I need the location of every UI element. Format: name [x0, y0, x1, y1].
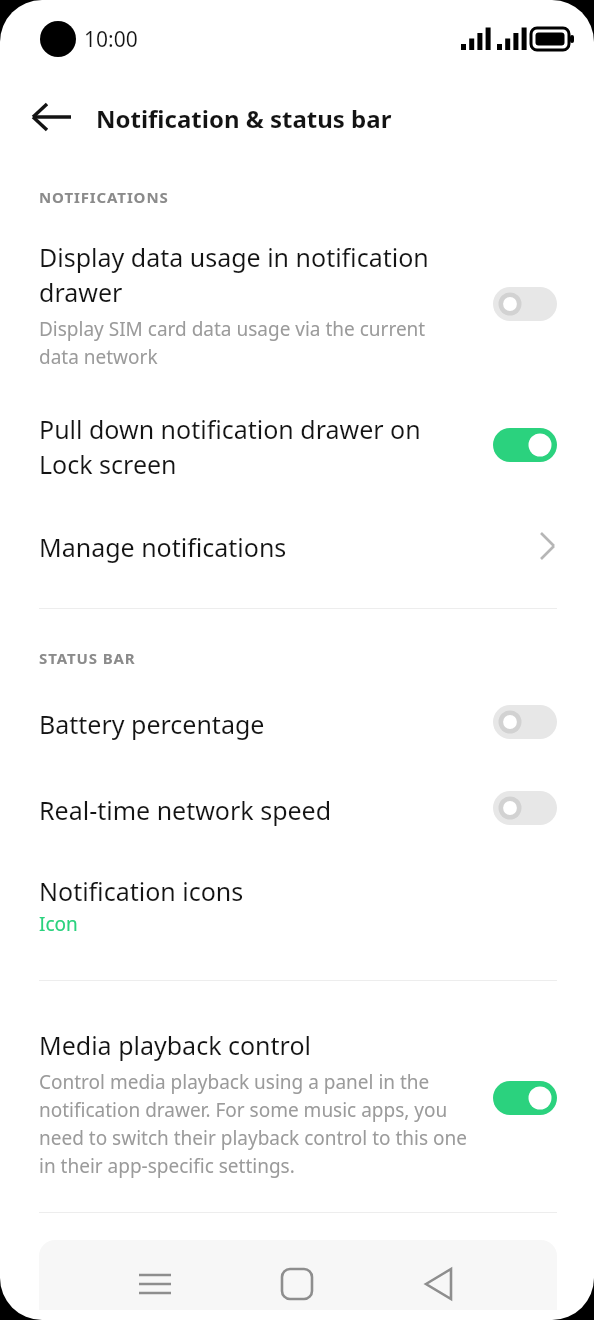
button[interactable]: Toggle off	[493, 287, 557, 321]
staticText: Display data usage in notification drawe…	[39, 240, 459, 310]
button[interactable]: Recent apps	[115, 1258, 195, 1310]
staticText: Manage notifications	[39, 530, 287, 564]
button[interactable]: Battery percentage	[0, 694, 594, 752]
staticText: Notification icons	[39, 874, 244, 908]
staticText: Pull down notification drawer on Lock sc…	[39, 412, 459, 482]
staticText: Real-time network speed	[39, 793, 332, 827]
staticText: STATUS BAR	[39, 648, 136, 668]
staticText: Display SIM card data usage via the curr…	[39, 316, 459, 370]
staticText: Icon	[39, 911, 78, 937]
button[interactable]: Media playback control	[0, 1016, 594, 1196]
button[interactable]: Real-time network speed	[0, 780, 594, 838]
staticText: Battery percentage	[39, 707, 265, 741]
button[interactable]: Toggle off	[493, 791, 557, 825]
button[interactable]: Back	[26, 91, 78, 143]
button[interactable]: Toggle on	[493, 428, 557, 462]
button[interactable]: Pull down notification drawer on Lock sc…	[0, 404, 594, 488]
button[interactable]: Toggle off	[493, 705, 557, 739]
button[interactable]: Notification icons	[0, 862, 594, 948]
staticText: Control media playback using a panel in …	[39, 1069, 471, 1179]
button[interactable]: Display data usage in notification drawe…	[0, 232, 594, 382]
button[interactable]: Back	[400, 1258, 480, 1310]
button[interactable]: Toggle on	[493, 1081, 557, 1115]
staticText: Media playback control	[39, 1028, 311, 1062]
staticText: 10:00	[84, 25, 138, 54]
staticText: Notification & status bar	[96, 102, 392, 135]
staticText: NOTIFICATIONS	[39, 187, 169, 207]
button[interactable]: Home	[257, 1258, 337, 1310]
button[interactable]: Manage notifications	[0, 516, 594, 578]
